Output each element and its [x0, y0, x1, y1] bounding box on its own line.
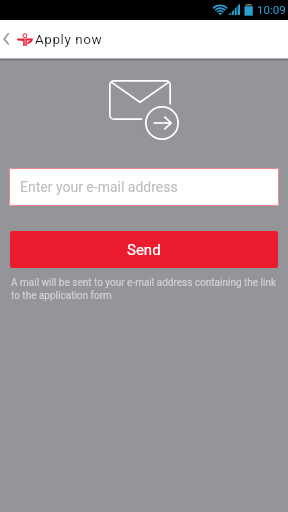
button[interactable]: Back	[0, 20, 16, 58]
staticText: 10:09	[257, 3, 286, 16]
staticText: Send	[127, 241, 161, 259]
staticText: Enter your e-mail address	[20, 179, 178, 195]
button[interactable]: Enter your e-mail address	[9, 168, 279, 206]
staticText: A mail will be sent to your e-mail addre…	[11, 277, 277, 302]
button[interactable]: Send	[10, 231, 278, 268]
staticText: Apply now	[35, 31, 103, 47]
